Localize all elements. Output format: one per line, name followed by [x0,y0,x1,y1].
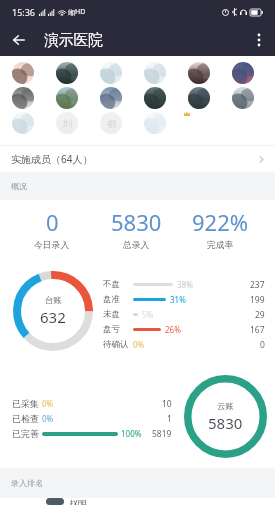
button[interactable]: Member avatar [12,87,34,109]
staticText: 总录入 [123,240,150,251]
button[interactable]: Member avatar [188,87,210,109]
staticText: 5830 [111,207,162,237]
button[interactable]: Member avatar [100,87,122,109]
staticText: 已完善 [12,428,39,439]
staticText: HD [75,7,86,17]
staticText: 5830 [208,413,243,433]
staticText: 5819 [152,428,172,440]
staticText: 5% [142,309,154,320]
button[interactable]: Member avatar [12,112,34,134]
staticText: 922% [192,207,249,237]
staticText: 0% [133,339,145,350]
staticText: 完成率 [207,240,234,251]
staticText: 今日录入 [34,240,70,251]
staticText: 31% [170,294,186,305]
staticText: 15:36 [12,6,36,18]
staticText: 10 [162,398,172,410]
button[interactable]: Member avatar [188,62,210,84]
button[interactable]: Member avatar [100,62,122,84]
staticText: 刘 [63,118,72,129]
button[interactable]: Member avatar [100,112,122,134]
staticText: 0% [42,413,54,424]
staticText: 都 [107,118,116,129]
staticText: 167 [250,324,265,336]
staticText: 100% [121,428,142,439]
staticText: 0 [260,339,265,351]
staticText: 237 [250,279,265,291]
button[interactable]: Back [0,24,38,56]
staticText: 已检查 [12,413,39,424]
staticText: 待确认 [103,339,129,350]
staticText: 赵明 [69,498,87,505]
button[interactable]: 赵明 [0,498,275,505]
staticText: 0% [42,398,54,409]
staticText: 实施成员（64人） [11,152,93,166]
button[interactable]: 实施成员（64人） [0,146,275,172]
staticText: 未盘 [103,309,120,320]
staticText: 632 [40,307,66,327]
button[interactable]: Member avatar [56,112,78,134]
staticText: 录入排名 [11,478,43,488]
staticText: 云账 [217,401,234,412]
staticText: 缃 [68,8,75,17]
button[interactable]: Member avatar [144,87,166,109]
button[interactable]: Member avatar [56,62,78,84]
staticText: 29 [255,309,265,321]
button[interactable]: More options [243,24,275,56]
staticText: 概况 [11,181,27,191]
staticText: 台账 [45,295,62,306]
staticText: 盘准 [103,294,120,305]
staticText: 不盘 [103,279,120,290]
staticText: 199 [250,294,265,306]
staticText: 0 [46,207,59,237]
button[interactable]: Member avatar [12,62,34,84]
staticText: 已采集 [12,398,39,409]
button[interactable]: Member avatar [232,62,254,84]
staticText: 26% [165,324,181,335]
button[interactable]: Member avatar [232,87,254,109]
staticText: 1 [167,413,172,425]
button[interactable]: Member avatar [144,112,166,134]
button[interactable]: Member avatar [144,62,166,84]
button[interactable]: Member avatar [56,87,78,109]
staticText: 演示医院 [44,31,103,50]
staticText: 38% [177,279,193,290]
staticText: 盘亏 [103,324,120,335]
